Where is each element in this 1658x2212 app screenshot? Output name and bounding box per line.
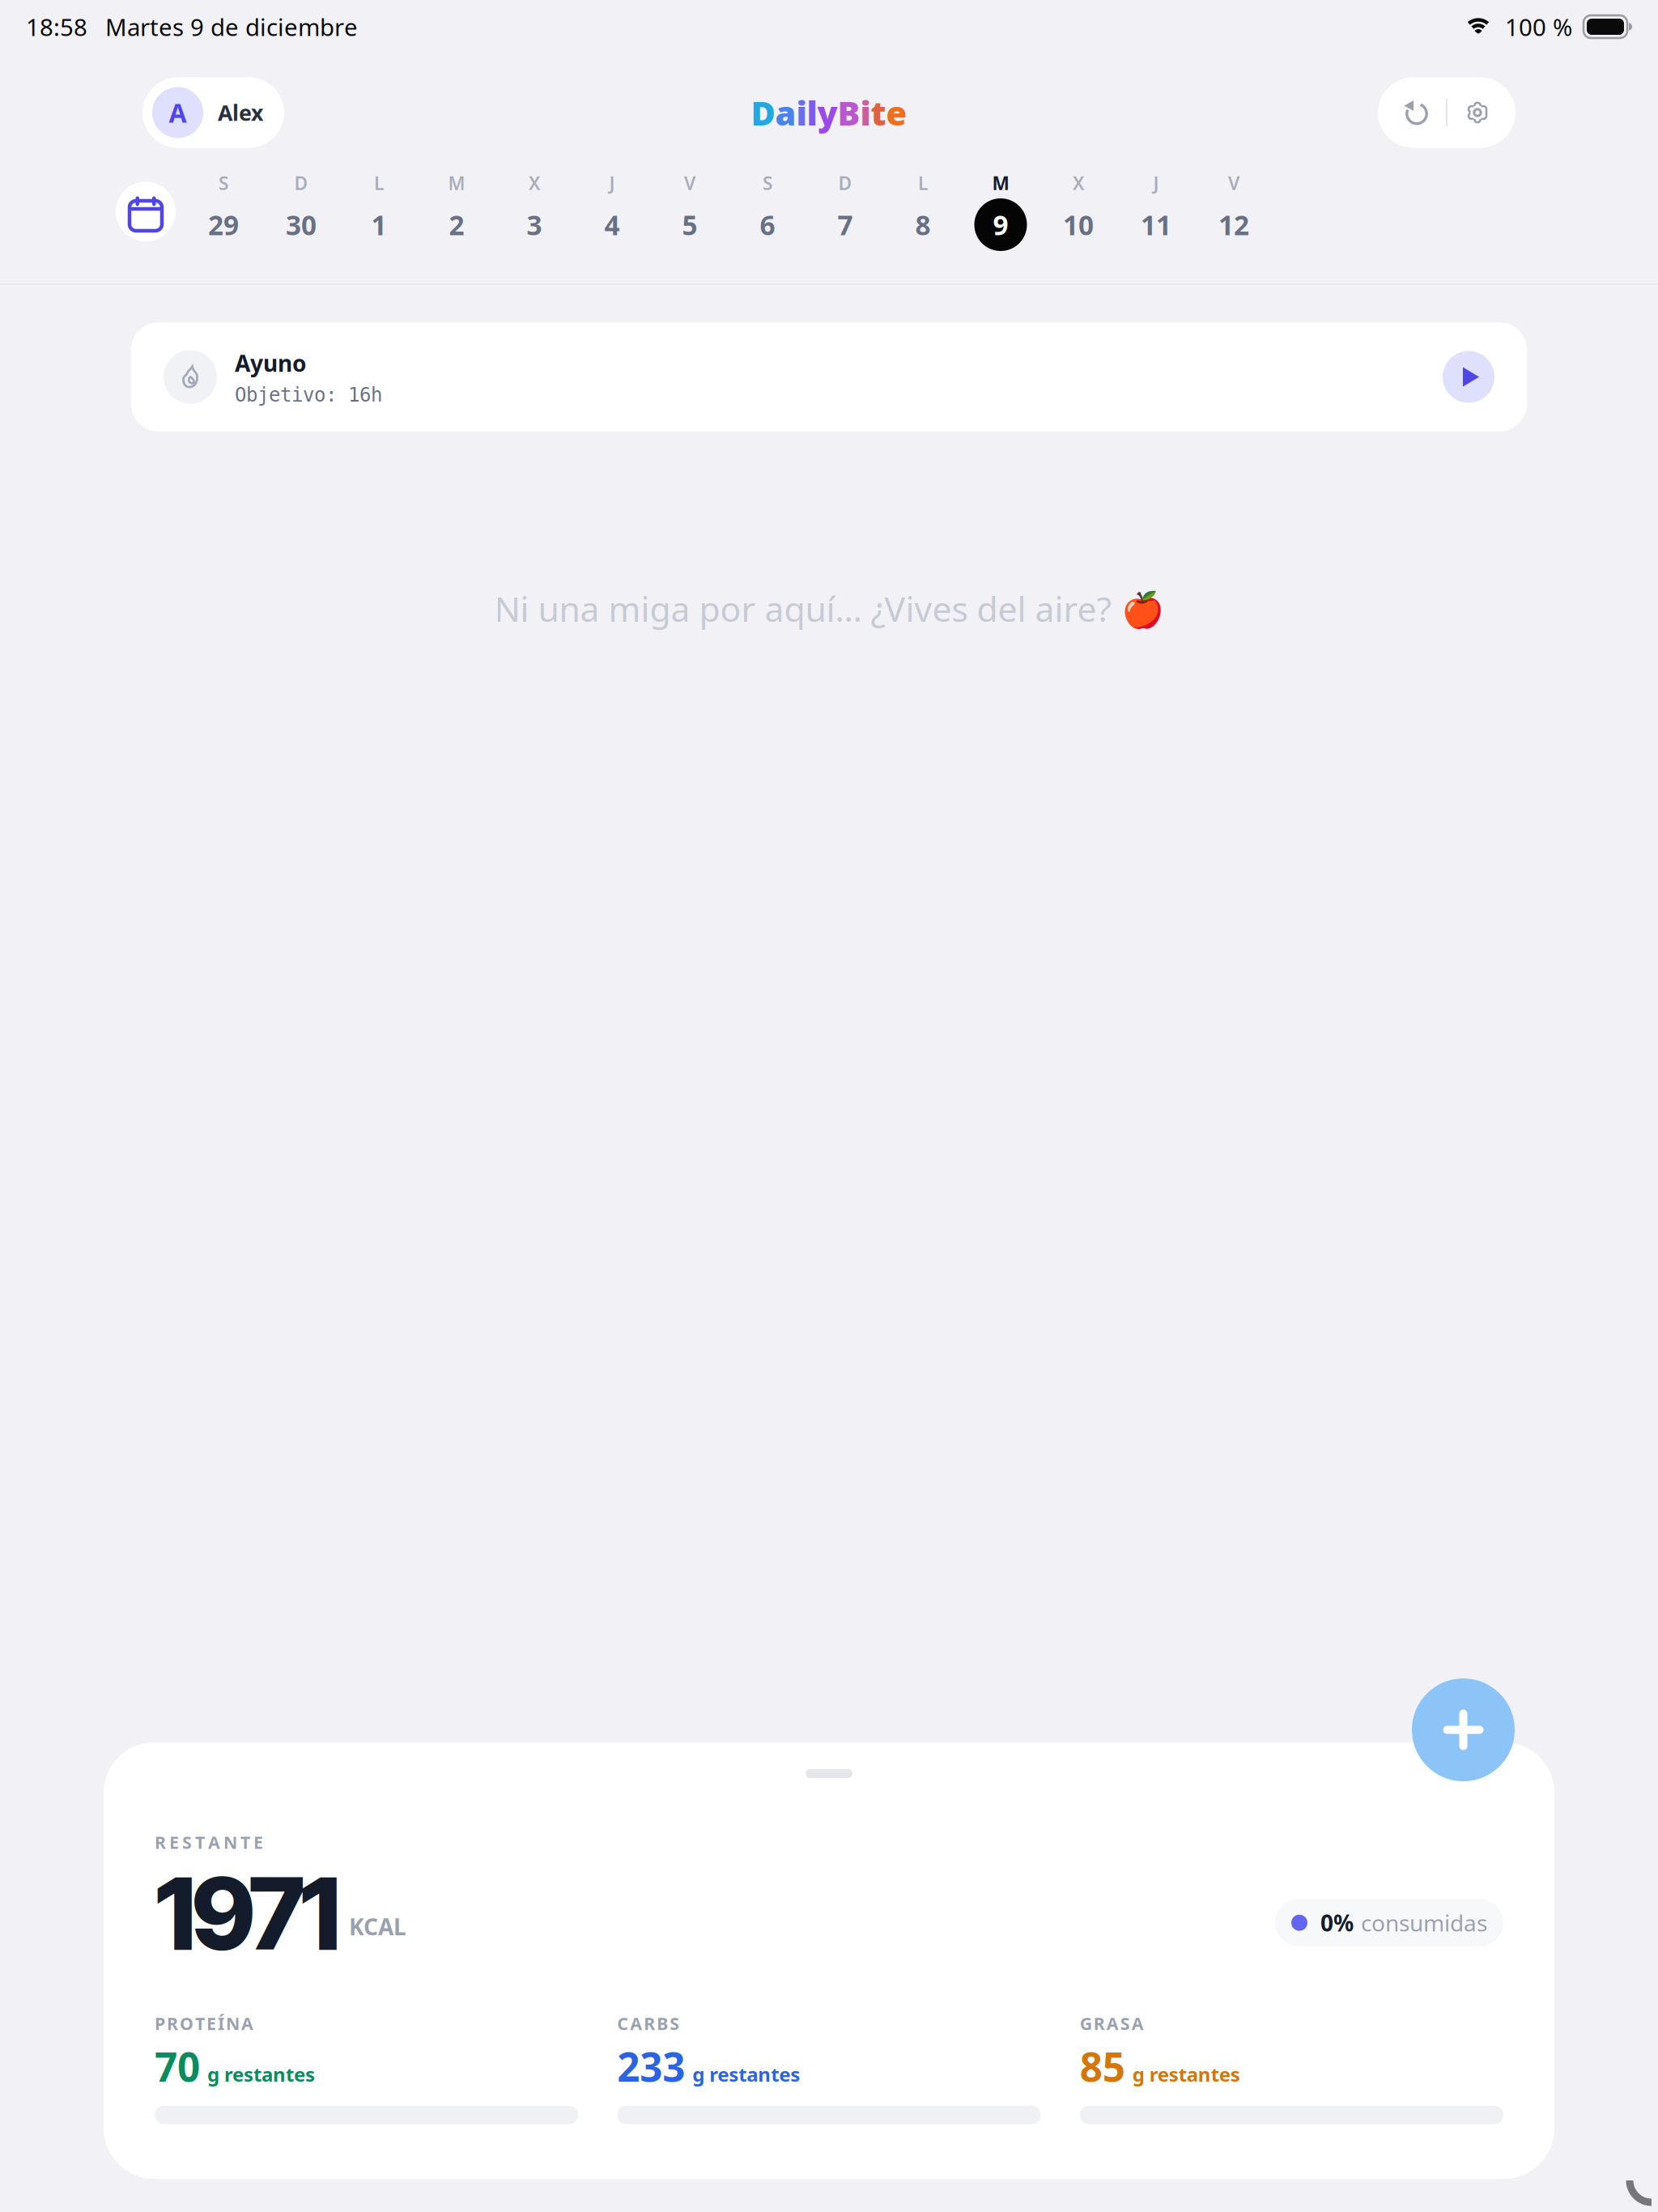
staticText: 6 <box>760 207 775 243</box>
button[interactable]: L <box>884 172 962 251</box>
staticText: t <box>871 90 886 135</box>
staticText: consumidas <box>1361 1908 1487 1938</box>
staticText: 2 <box>449 207 464 243</box>
button[interactable]: A <box>142 77 284 148</box>
staticText: 7 <box>838 207 853 243</box>
staticText: Alex <box>218 98 263 127</box>
staticText: V <box>684 171 695 195</box>
staticText: G R A S A <box>1080 2012 1144 2035</box>
button[interactable]: M <box>962 172 1039 251</box>
staticText: 233 <box>617 2040 685 2093</box>
staticText: g restantes <box>207 2061 315 2087</box>
button[interactable]: J <box>573 172 651 251</box>
staticText: Ni una miga por aquí... ¿Vives del aire?… <box>494 585 1164 631</box>
staticText: A <box>169 95 187 130</box>
staticText: g restantes <box>692 2061 800 2087</box>
button[interactable]: Open calendar <box>116 172 176 251</box>
button[interactable]: Add food <box>1412 1678 1515 1781</box>
button[interactable]: L <box>340 172 418 251</box>
staticText: l <box>807 90 817 135</box>
staticText: J <box>1153 171 1159 195</box>
staticText: M <box>448 171 465 195</box>
staticText: X <box>1073 171 1084 195</box>
staticText: 9 <box>993 207 1008 243</box>
button[interactable]: S <box>185 172 262 251</box>
button[interactable]: Ayuno <box>131 322 1527 432</box>
staticText: 70 <box>155 2040 200 2093</box>
staticText: e <box>886 90 907 135</box>
button[interactable]: J <box>1117 172 1195 251</box>
button[interactable]: M <box>418 172 495 251</box>
staticText: y <box>817 90 838 135</box>
button[interactable]: S <box>729 172 806 251</box>
staticText: S <box>763 171 772 195</box>
staticText: 12 <box>1218 207 1249 243</box>
staticText: Martes 9 de diciembre <box>105 11 358 43</box>
staticText: 100 % <box>1505 11 1572 43</box>
button[interactable]: D <box>806 172 884 251</box>
staticText: Objetivo: 16h <box>235 384 382 406</box>
staticText: 10 <box>1063 207 1094 243</box>
staticText: P R O T E Í N A <box>155 2012 253 2035</box>
staticText: X <box>529 171 540 195</box>
staticText: S <box>219 171 228 195</box>
staticText: R E S T A N T E <box>155 1831 263 1854</box>
staticText: D <box>838 171 852 195</box>
staticText: D <box>294 171 308 195</box>
staticText: 30 <box>286 207 317 243</box>
staticText: 3 <box>527 207 542 243</box>
staticText: D <box>751 90 775 135</box>
staticText: 11 <box>1141 207 1171 243</box>
staticText: Ayuno <box>235 348 307 378</box>
staticText: B <box>838 90 860 135</box>
staticText: C A R B S <box>617 2012 679 2035</box>
staticText: V <box>1228 171 1239 195</box>
staticText: J <box>609 171 615 195</box>
staticText: a <box>775 90 796 135</box>
staticText: g restantes <box>1132 2061 1240 2087</box>
staticText: 4 <box>604 207 620 243</box>
staticText: 1 <box>371 207 387 243</box>
staticText: 1971 <box>155 1854 341 1974</box>
button[interactable]: X <box>495 172 573 251</box>
staticText: 85 <box>1080 2040 1125 2093</box>
staticText: i <box>860 90 871 135</box>
button[interactable]: Reset day <box>1386 87 1446 138</box>
staticText: M <box>992 171 1009 195</box>
button[interactable]: Settings <box>1448 87 1507 138</box>
staticText: 29 <box>208 207 239 243</box>
staticText: L <box>374 171 384 195</box>
staticText: 0% <box>1320 1908 1354 1938</box>
staticText: i <box>796 90 807 135</box>
staticText: KCAL <box>349 1911 406 1941</box>
button[interactable]: X <box>1039 172 1117 251</box>
button[interactable]: V <box>1195 172 1273 251</box>
staticText: L <box>918 171 928 195</box>
staticText: 5 <box>682 207 697 243</box>
staticText: 18:58 <box>26 11 87 43</box>
staticText: 8 <box>915 207 931 243</box>
button[interactable]: V <box>651 172 729 251</box>
button[interactable]: D <box>262 172 340 251</box>
